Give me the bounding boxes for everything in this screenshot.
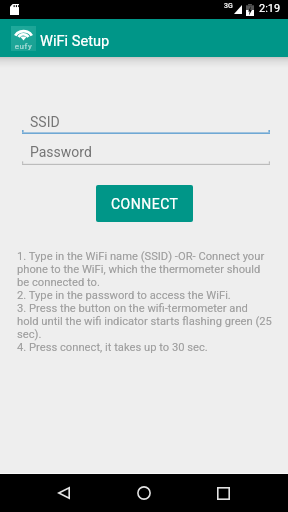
staticText: eufy <box>11 42 36 51</box>
staticText: SSID <box>30 114 60 130</box>
button[interactable] <box>22 141 270 165</box>
button[interactable]: Recent apps <box>203 474 243 512</box>
button[interactable] <box>22 110 270 134</box>
button[interactable]: App icon <box>11 26 36 51</box>
staticText: 1. Type in the WiFi name (SSID) -OR- Con… <box>17 250 272 354</box>
staticText: Password <box>30 144 92 160</box>
button[interactable]: Home <box>124 474 164 512</box>
staticText: 3G <box>224 2 233 10</box>
button[interactable]: CONNECT <box>96 185 193 222</box>
staticText: WiFi Setup <box>40 32 110 49</box>
staticText: 2:19 <box>259 2 281 15</box>
staticText: CONNECT <box>111 196 179 212</box>
button[interactable]: Back <box>44 474 84 512</box>
